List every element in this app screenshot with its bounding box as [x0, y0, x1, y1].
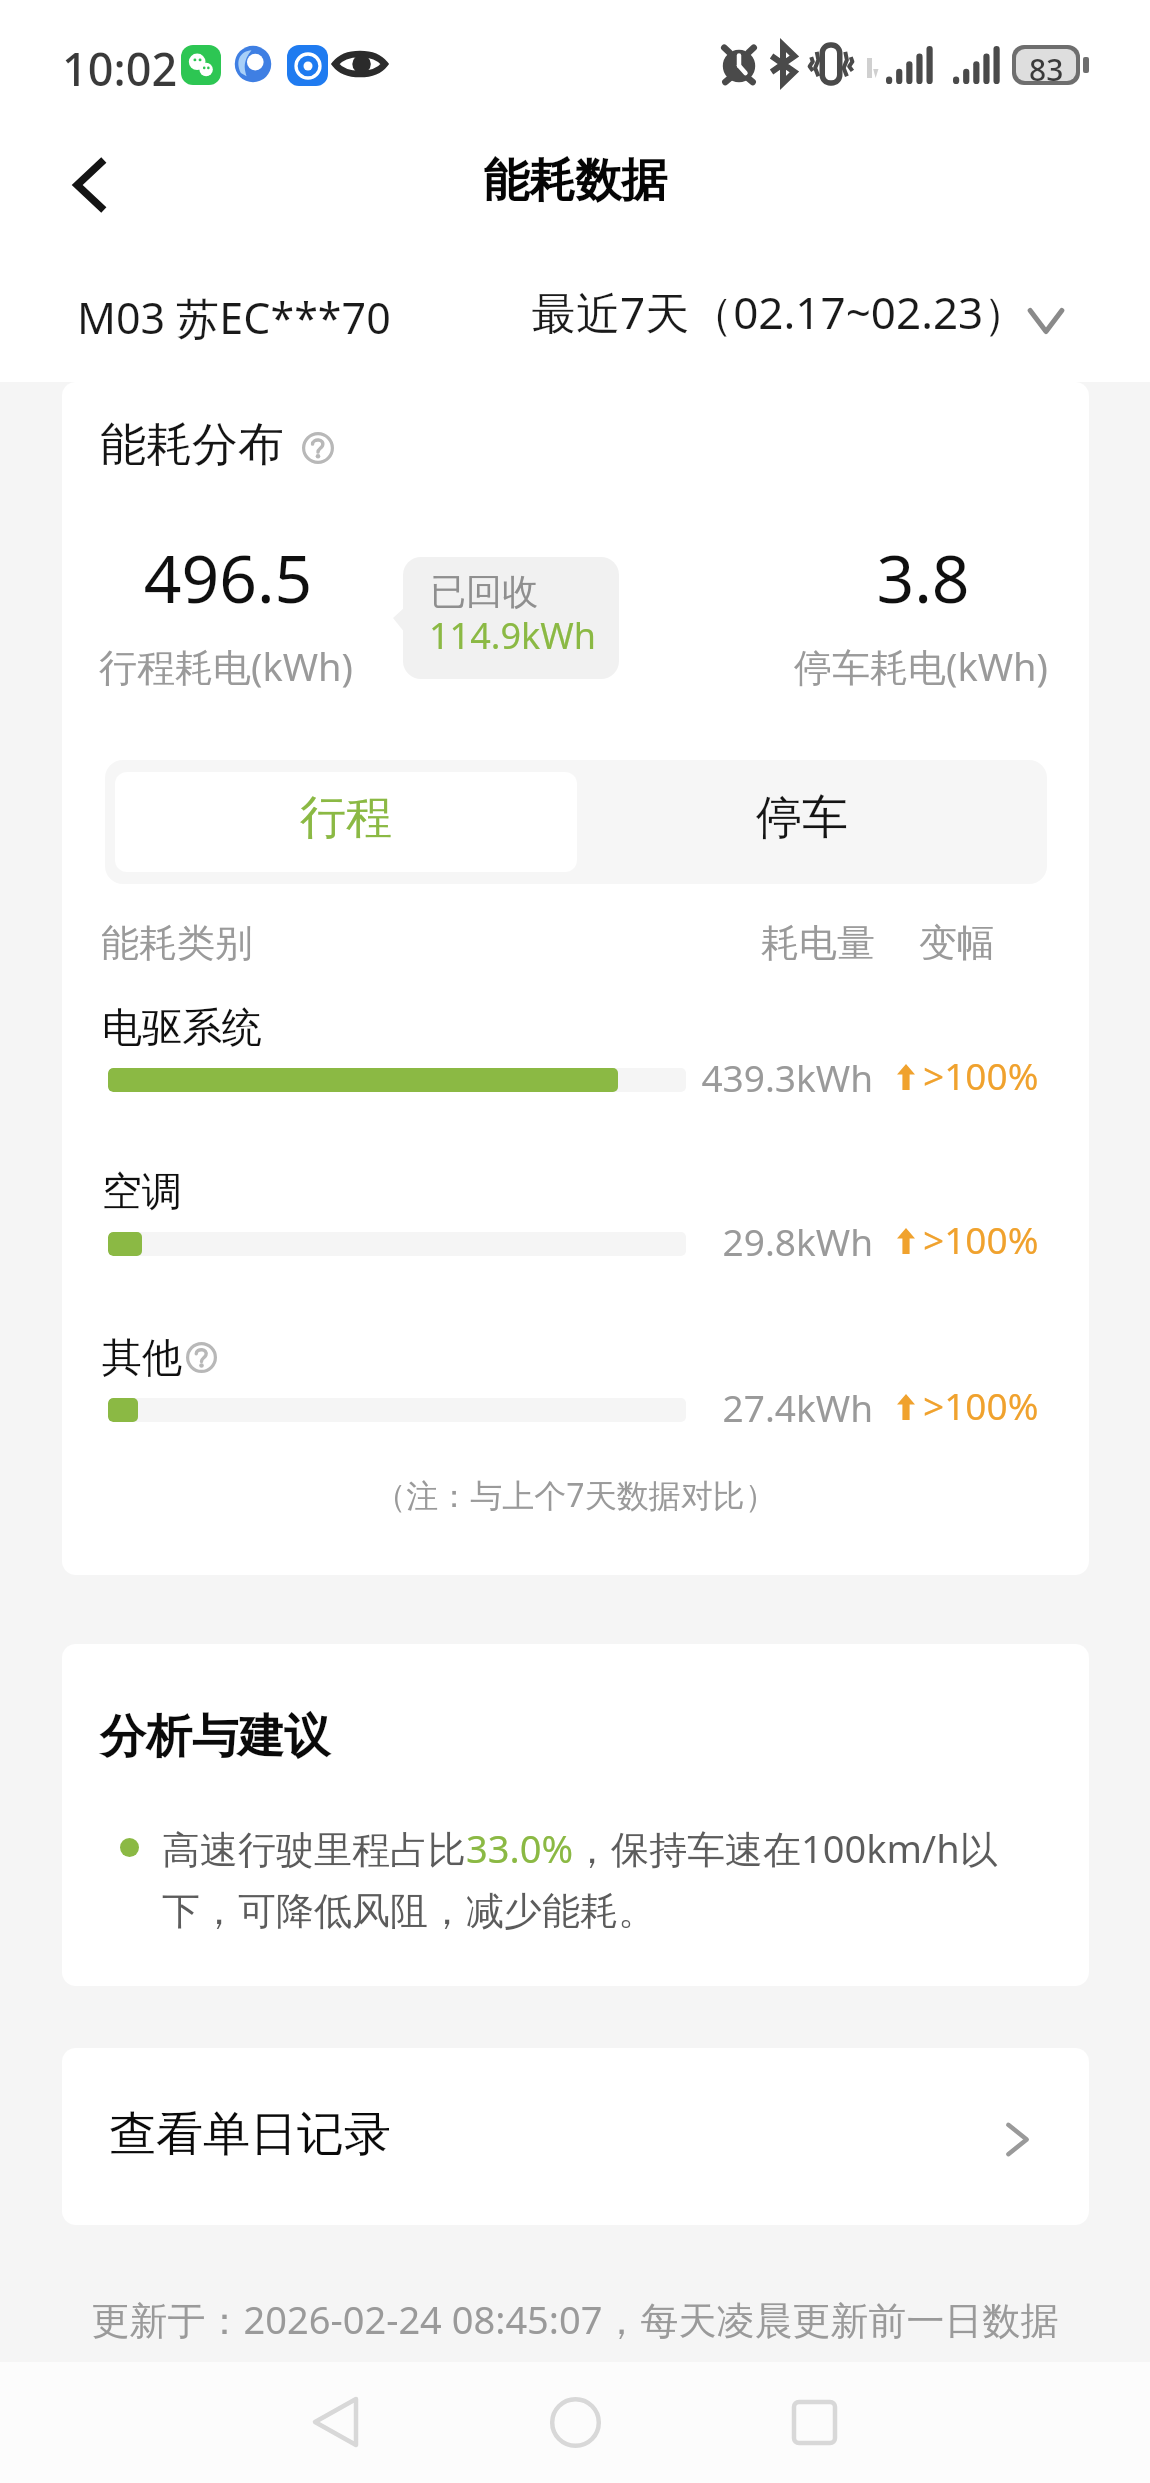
staticText: 496.5: [68, 532, 388, 622]
staticText: 电驱系统: [102, 1002, 262, 1052]
staticText: 最近7天（02.17~02.23）: [532, 282, 1028, 342]
button[interactable]: More information: [302, 432, 334, 464]
staticText: >100%: [923, 1380, 1039, 1430]
staticText: >100%: [923, 1050, 1039, 1100]
staticText: 114.9kWh: [429, 611, 596, 660]
button[interactable]: 停车: [567, 760, 1037, 884]
button[interactable]: Recents: [764, 2372, 864, 2472]
staticText: 耗电量: [761, 919, 875, 967]
staticText: 变幅: [919, 919, 995, 967]
button[interactable]: 行程: [115, 772, 577, 872]
staticText: （注：与上个7天数据对比）: [62, 1473, 1089, 1517]
staticText: 分析与建议: [100, 1708, 330, 1766]
button[interactable]: 最近7天（02.17~02.23）: [532, 282, 1064, 342]
button[interactable]: Home: [525, 2372, 625, 2472]
staticText: 停车耗电(kWh): [761, 640, 1081, 692]
staticText: 其他: [102, 1332, 182, 1382]
staticText: 行程: [300, 789, 392, 847]
staticText: M03 苏EC***70: [77, 288, 391, 347]
staticText: 能耗类别: [101, 919, 253, 967]
staticText: 更新于：2026-02-24 08:45:07，每天凌晨更新前一日数据: [0, 2293, 1150, 2345]
staticText: 查看单日记录: [109, 2105, 391, 2164]
staticText: 空调: [102, 1166, 182, 1216]
staticText: 已回收: [430, 569, 538, 614]
staticText: 能耗数据: [0, 152, 1150, 210]
button[interactable]: 查看单日记录: [62, 2048, 1089, 2225]
staticText: 停车: [756, 789, 848, 847]
button[interactable]: More information: [186, 1342, 217, 1373]
staticText: 高速行驶里程占比33.0%，保持车速在100km/h以下，可降低风阻，减少能耗。: [162, 1822, 1030, 1936]
button[interactable]: Back: [50, 145, 130, 225]
staticText: 83: [1029, 49, 1064, 81]
staticText: 27.4kWh: [543, 1382, 873, 1432]
staticText: >100%: [923, 1214, 1039, 1264]
staticText: 能耗分布: [100, 416, 284, 474]
staticText: 3.8: [763, 532, 1083, 622]
staticText: 439.3kWh: [543, 1052, 873, 1102]
staticText: 10:02: [62, 38, 178, 99]
button[interactable]: Back: [285, 2372, 385, 2472]
staticText: 29.8kWh: [543, 1216, 873, 1266]
staticText: 行程耗电(kWh): [66, 640, 386, 692]
